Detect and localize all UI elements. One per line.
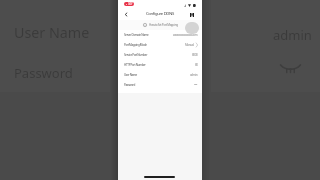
button[interactable]: How to Set Port Mapping [118,20,202,30]
staticText: Password [124,83,135,87]
staticText: Manual [185,43,194,47]
button[interactable]: Server Domain Name [118,30,202,40]
staticText: 80 [195,63,198,67]
staticText: •••• [194,83,198,87]
staticText: How to Set Port Mapping [149,23,178,27]
staticText: admin [273,26,312,44]
staticText: User Name [14,23,90,42]
button[interactable]: Save [186,9,197,20]
button[interactable]: HTTP Port Number [118,60,202,70]
button[interactable]: User Name [118,70,202,80]
staticText: www.xxxxxxxxxx.com [173,33,198,37]
staticText: admin [190,73,198,77]
staticText: Service Port Number [124,53,148,57]
button[interactable]: Back [120,9,131,20]
staticText: Port Mapping Mode [124,43,147,47]
staticText: HTTP Port Number [124,63,146,67]
staticText: Server Domain Name [124,33,149,37]
staticText: User Name [124,73,137,77]
button[interactable]: Password [118,80,202,90]
staticText: Configure DDNS [146,11,174,17]
button[interactable]: Port Mapping Mode [118,40,202,50]
staticText: Password [14,64,73,82]
staticText: 0:07 [128,2,133,6]
button[interactable]: Service Port Number [118,50,202,60]
staticText: 8000 [192,53,198,57]
